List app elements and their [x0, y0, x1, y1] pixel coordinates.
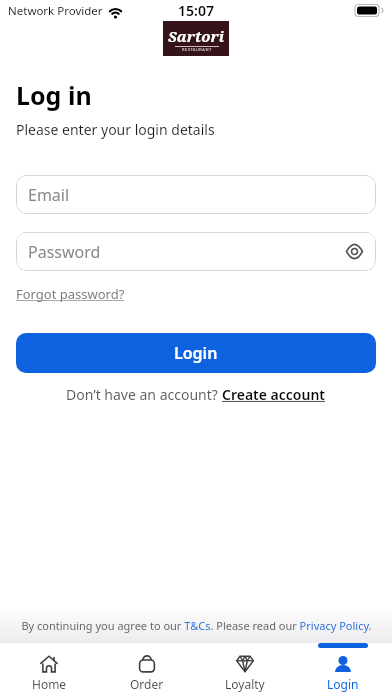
staticText: Log in	[16, 78, 92, 112]
staticText: Sartori	[168, 26, 225, 46]
button[interactable]: Home	[0, 643, 98, 696]
staticText: Email	[28, 184, 70, 206]
staticText: Login	[327, 676, 359, 692]
staticText: Please enter your login details	[16, 120, 215, 139]
button[interactable]: Login	[294, 643, 392, 696]
staticText: 15:07	[178, 1, 214, 20]
button[interactable]: Forgot password?	[16, 285, 125, 303]
staticText: Home	[32, 676, 67, 692]
staticText: Network Provider	[8, 3, 103, 19]
button[interactable]: Email	[16, 175, 376, 214]
button[interactable]: Password	[16, 232, 376, 271]
button[interactable]: Order	[98, 643, 196, 696]
button[interactable]: Loyalty	[196, 643, 294, 696]
staticText: Login	[174, 342, 218, 364]
staticText: Don’t have an account?	[66, 385, 222, 404]
staticText: Order	[130, 676, 164, 692]
staticText: Loyalty	[225, 676, 265, 692]
staticText: RESTAURANT	[182, 47, 212, 52]
button[interactable]: Create account	[222, 385, 326, 404]
button[interactable]: Login	[16, 333, 376, 373]
staticText: Password	[28, 241, 101, 263]
staticText: By continuing you agree to our T&Cs. Ple…	[21, 618, 372, 633]
